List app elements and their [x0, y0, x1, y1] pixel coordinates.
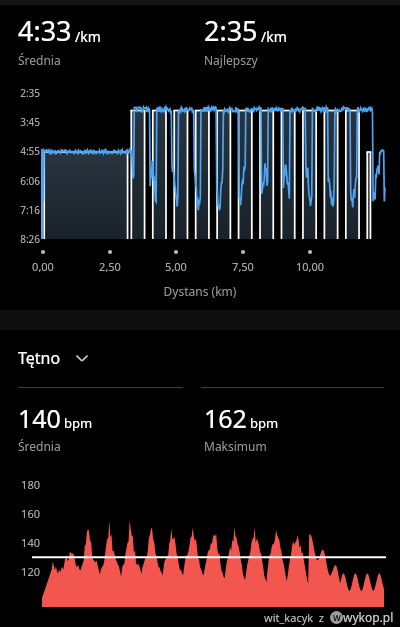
staticText: /km: [75, 27, 101, 46]
staticText: 2:35: [10, 86, 40, 100]
staticText: 8:26: [10, 232, 40, 246]
staticText: Dystans (km): [0, 283, 400, 299]
button[interactable]: 2:35: [204, 12, 390, 68]
staticText: 180: [8, 477, 40, 492]
staticText: W: [333, 612, 341, 623]
staticText: Średnia: [18, 52, 61, 68]
staticText: Tętno: [18, 347, 61, 369]
staticText: 140: [18, 401, 61, 435]
staticText: 3:45: [10, 115, 40, 129]
staticText: Najlepszy: [204, 52, 258, 68]
button[interactable]: Tętno, rozwiń: [18, 347, 90, 369]
staticText: wykop.pl: [343, 609, 394, 625]
staticText: bpm: [64, 414, 93, 432]
staticText: 4:55: [10, 144, 40, 158]
staticText: 4:33: [18, 12, 72, 49]
button[interactable]: 162: [204, 401, 390, 454]
staticText: 2:35: [204, 12, 258, 49]
staticText: bpm: [250, 414, 279, 432]
staticText: wit_kacyk z: [264, 610, 325, 625]
staticText: /km: [261, 27, 287, 46]
staticText: 5,00: [152, 259, 200, 274]
staticText: 7,50: [219, 259, 267, 274]
staticText: 7:16: [10, 203, 40, 217]
staticText: 10,00: [286, 259, 334, 274]
staticText: 6:06: [10, 174, 40, 188]
button[interactable]: 140: [18, 401, 204, 454]
staticText: 140: [8, 535, 40, 550]
button[interactable]: 4:33: [18, 12, 204, 68]
staticText: 2,50: [86, 259, 134, 274]
staticText: Maksimum: [204, 438, 267, 454]
staticText: 160: [8, 506, 40, 521]
staticText: 162: [204, 401, 247, 435]
staticText: 0,00: [19, 259, 67, 274]
staticText: 120: [8, 564, 40, 579]
staticText: Średnia: [18, 438, 61, 454]
